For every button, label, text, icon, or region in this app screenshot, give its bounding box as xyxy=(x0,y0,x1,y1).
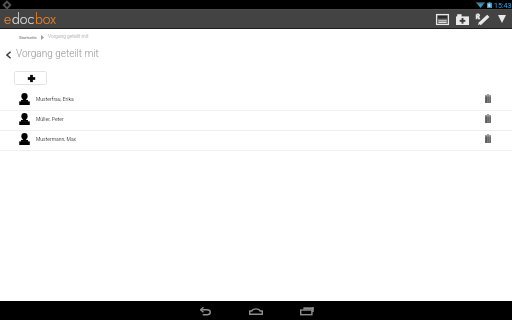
button[interactable]: Musterfrau, Erika xyxy=(0,91,512,110)
button[interactable]: Home xyxy=(243,304,268,317)
staticText: 15:43 xyxy=(494,2,512,10)
staticText: Vorgang geteilt mit xyxy=(48,34,89,40)
staticText: box xyxy=(35,9,56,29)
button[interactable]: Delete xyxy=(478,129,498,148)
button[interactable]: Add person xyxy=(14,71,47,85)
button[interactable]: Sign document xyxy=(470,12,494,26)
staticText: Vorgang geteilt mit xyxy=(16,48,99,60)
button[interactable]: Back xyxy=(192,304,217,317)
button[interactable]: Startseite xyxy=(19,35,37,40)
staticText: e xyxy=(4,9,12,29)
staticText: Musterfrau, Erika xyxy=(36,96,74,102)
button[interactable]: New folder xyxy=(450,12,474,26)
staticText: doc xyxy=(12,9,35,29)
button[interactable]: Mustermann, Max xyxy=(0,131,512,150)
button[interactable]: Documents xyxy=(430,12,454,26)
button[interactable]: Delete xyxy=(478,89,498,108)
staticText: Mustermann, Max xyxy=(36,136,77,142)
button[interactable]: Recent apps xyxy=(294,304,319,317)
button[interactable]: Delete xyxy=(478,109,498,128)
staticText: Müller, Peter xyxy=(36,116,64,122)
button[interactable]: More options xyxy=(494,12,510,26)
button[interactable]: Müller, Peter xyxy=(0,111,512,130)
